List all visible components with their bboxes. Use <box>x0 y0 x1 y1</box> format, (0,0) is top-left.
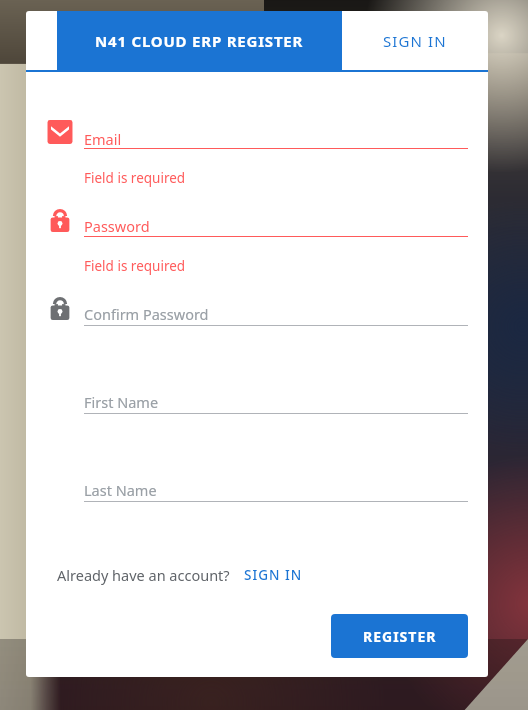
other: Password <box>47 207 73 233</box>
button[interactable]: SIGN IN <box>244 566 303 584</box>
staticText: Already have an account? <box>57 565 230 585</box>
staticText: Field is required <box>84 169 186 187</box>
staticText: N41 CLOUD ERP REGISTER <box>95 31 304 51</box>
staticText: First Name <box>84 392 159 412</box>
staticText: Email <box>84 129 122 149</box>
staticText: Confirm Password <box>84 304 209 324</box>
staticText: Field is required <box>84 257 186 275</box>
staticText: SIGN IN <box>244 566 303 584</box>
button[interactable]: REGISTER <box>331 614 468 658</box>
staticText: Password <box>84 216 150 236</box>
other: Password <box>47 295 73 321</box>
button[interactable]: N41 CLOUD ERP REGISTER <box>57 11 342 70</box>
other: Email <box>47 119 73 145</box>
button[interactable]: SIGN IN <box>342 11 488 70</box>
staticText: Last Name <box>84 480 157 500</box>
staticText: SIGN IN <box>383 31 447 51</box>
staticText: REGISTER <box>363 627 437 646</box>
